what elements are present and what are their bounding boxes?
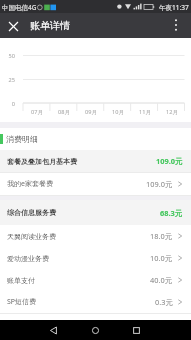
staticText: 11月 xyxy=(139,108,151,116)
staticText: 12月 xyxy=(166,108,178,116)
button[interactable]: Back xyxy=(43,320,63,340)
button[interactable]: 爱动漫业务费 xyxy=(0,247,191,269)
staticText: 账单详情 xyxy=(30,19,70,32)
staticText: 18.0元 xyxy=(150,231,173,241)
staticText: 套餐及叠加包月基本费 xyxy=(7,157,77,166)
staticText: 109.0元 xyxy=(146,179,173,189)
staticText: 08月 xyxy=(58,108,70,116)
button[interactable]: More options xyxy=(168,17,184,33)
staticText: 0 xyxy=(11,100,15,108)
staticText: 09月 xyxy=(85,108,97,116)
staticText: 我的e家套餐费 xyxy=(7,179,53,189)
button[interactable]: SP短信费 xyxy=(0,291,191,313)
staticText: 天翼阅读业务费 xyxy=(7,232,56,241)
button[interactable]: 天翼阅读业务费 xyxy=(0,225,191,247)
staticText: SP短信费 xyxy=(7,297,37,307)
button[interactable]: Close xyxy=(4,17,22,35)
staticText: 68.3元 xyxy=(160,208,183,218)
button[interactable]: Home xyxy=(85,320,105,340)
staticText: 10.0元 xyxy=(150,253,173,263)
button[interactable]: 我的e家套餐费 xyxy=(0,173,191,195)
staticText: 爱动漫业务费 xyxy=(7,254,49,263)
button[interactable]: 套餐及叠加包月基本费 xyxy=(0,150,191,172)
staticText: 25 xyxy=(8,76,15,84)
staticText: 综合信息服务费 xyxy=(7,208,56,217)
staticText: 中国电信4G xyxy=(2,3,37,12)
staticText: 消费明细 xyxy=(6,134,38,144)
staticText: 40.0元 xyxy=(150,275,173,285)
staticText: 50 xyxy=(8,52,15,60)
button[interactable]: 综合信息服务费 xyxy=(0,200,191,225)
button[interactable]: 账单支付 xyxy=(0,269,191,291)
staticText: 账单支付 xyxy=(7,276,35,285)
staticText: 10月 xyxy=(112,108,124,116)
staticText: 109.0元 xyxy=(156,156,183,166)
button[interactable]: Recents xyxy=(126,320,146,340)
staticText: 07月 xyxy=(31,108,43,116)
staticText: 午夜11:37 xyxy=(159,3,189,12)
staticText: 0.3元 xyxy=(155,297,173,307)
